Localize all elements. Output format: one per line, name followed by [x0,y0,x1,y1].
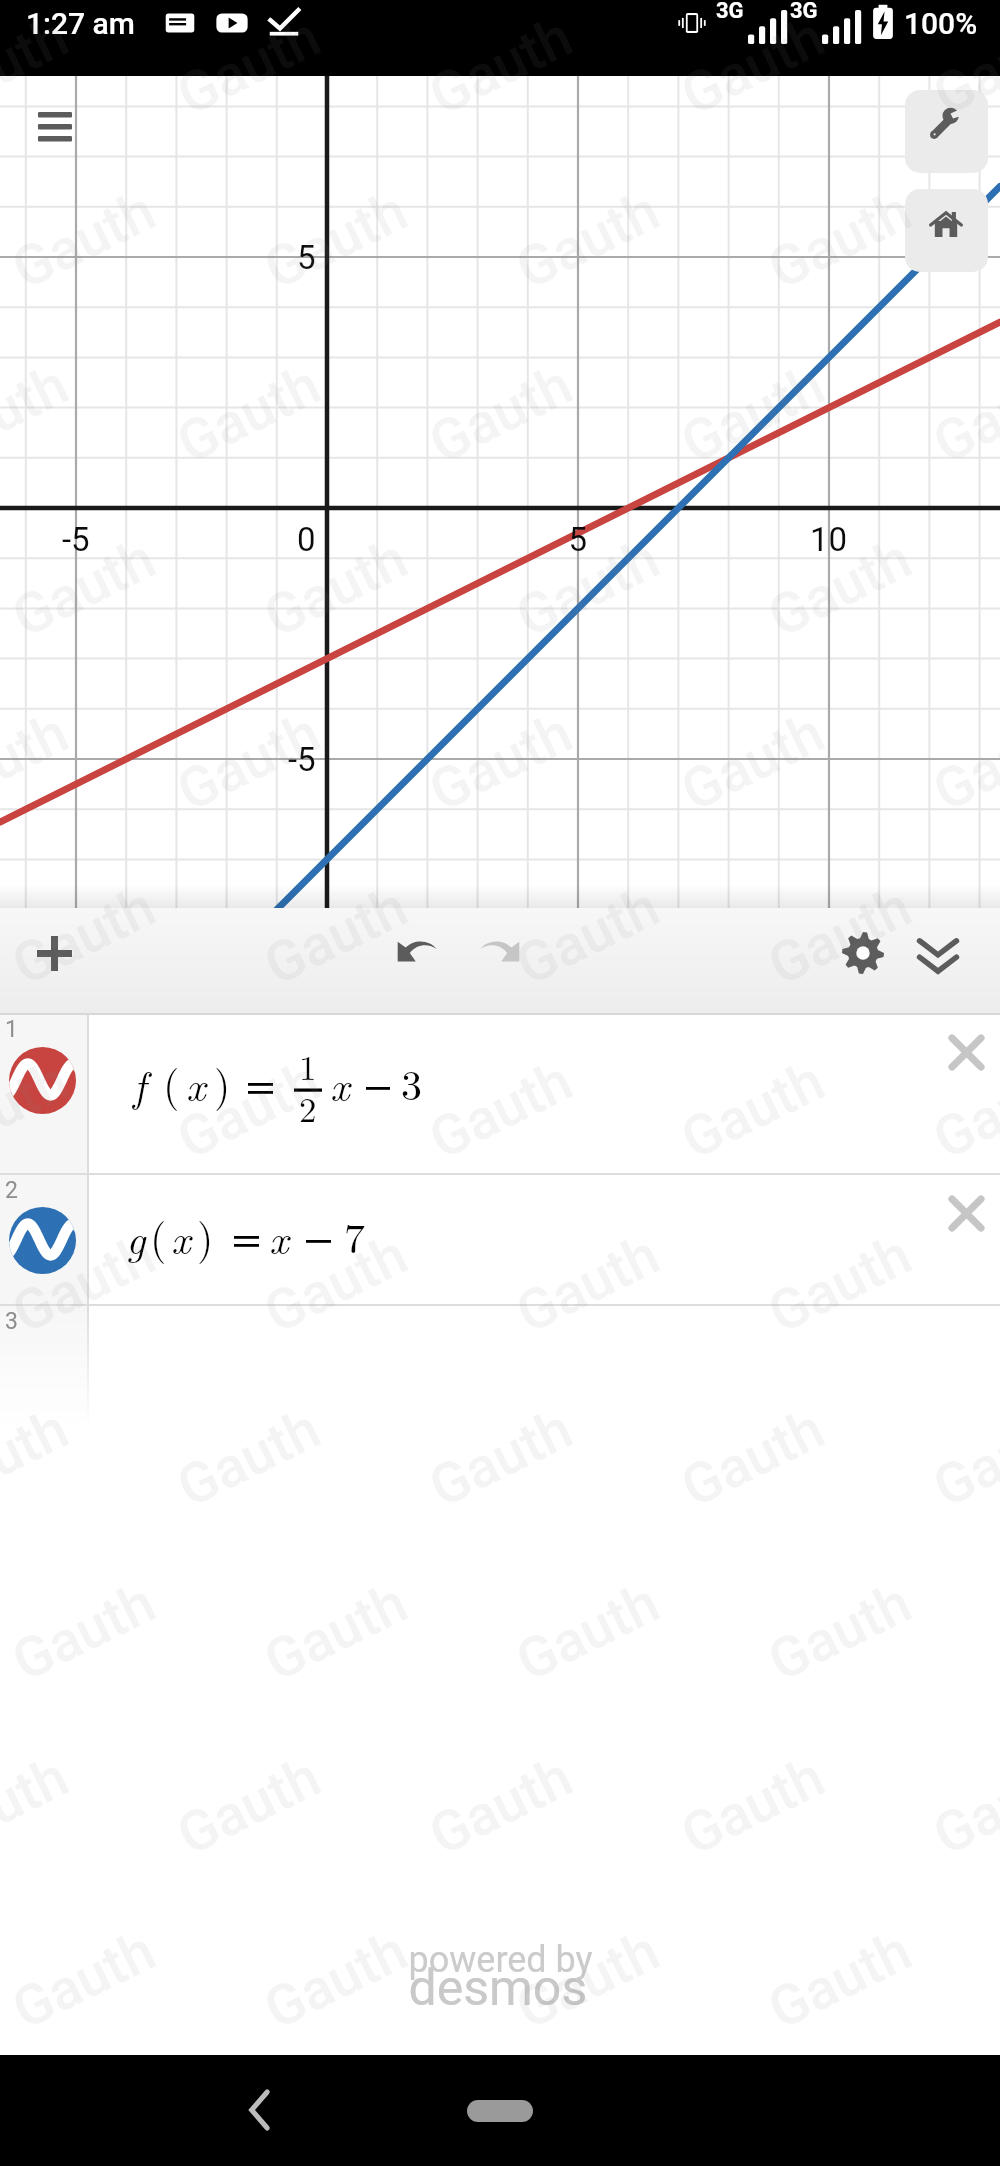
button[interactable]: Toggle graph [9,1047,76,1114]
button[interactable]: Undo [377,910,457,990]
button[interactable]: Redo [460,910,540,990]
button[interactable]: Delete expression [930,1016,1000,1088]
button[interactable]: Tools [905,90,988,173]
staticText: 3 [5,1308,18,1335]
button[interactable]: 1 [0,1014,1000,1175]
staticText: 1 [5,1016,18,1043]
button[interactable]: 2 [0,1175,1000,1306]
staticText: 3G [716,0,744,24]
button[interactable]: Add expression [14,913,94,993]
staticText: 100% [904,6,978,41]
button[interactable]: Delete expression [930,1177,1000,1249]
staticText: 1:27 am [26,6,135,41]
button[interactable]: Toggle graph [9,1207,76,1274]
staticText: 3G [790,0,818,24]
button[interactable]: Collapse [898,916,978,996]
button[interactable]: Home [905,189,988,272]
button[interactable]: Home [455,2098,545,2124]
button[interactable]: Back [215,2065,305,2155]
button[interactable]: Graph settings [823,913,903,993]
button[interactable]: Menu [12,84,97,169]
staticText: 2 [5,1177,18,1204]
